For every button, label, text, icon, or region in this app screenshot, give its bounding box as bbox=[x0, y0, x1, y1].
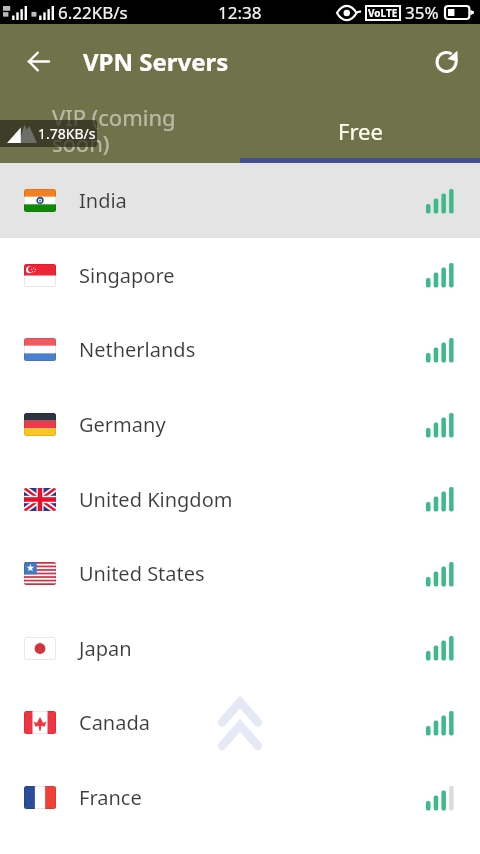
button[interactable]: Free bbox=[240, 98, 480, 163]
staticText: Netherlands bbox=[79, 336, 196, 363]
button[interactable]: VIP (coming soon) bbox=[0, 98, 240, 163]
staticText: Free bbox=[338, 116, 383, 146]
staticText: 35% bbox=[405, 1, 439, 24]
other: Scroll up bbox=[215, 694, 265, 758]
staticText: VoLTE bbox=[368, 6, 398, 20]
button[interactable]: United States bbox=[0, 536, 480, 611]
button[interactable]: France bbox=[0, 760, 480, 835]
staticText: Germany bbox=[79, 411, 166, 438]
staticText: 12:38 bbox=[218, 1, 262, 24]
staticText: France bbox=[79, 784, 142, 811]
button[interactable]: Refresh bbox=[425, 39, 469, 83]
staticText: United Kingdom bbox=[79, 486, 233, 513]
staticText: VIP (coming soon) bbox=[52, 102, 176, 159]
button[interactable]: Netherlands bbox=[0, 312, 480, 387]
staticText: Singapore bbox=[79, 262, 175, 289]
button[interactable]: India bbox=[0, 163, 480, 238]
staticText: United States bbox=[79, 560, 205, 587]
staticText: India bbox=[79, 187, 127, 214]
button[interactable]: Back bbox=[16, 39, 60, 83]
staticText: VPN Servers bbox=[83, 45, 229, 78]
staticText: 6.22KB/s bbox=[58, 1, 128, 24]
button[interactable]: Japan bbox=[0, 611, 480, 685]
button[interactable]: Singapore bbox=[0, 238, 480, 312]
button[interactable]: United Kingdom bbox=[0, 462, 480, 536]
staticText: 1.78KB/s bbox=[38, 124, 96, 143]
staticText: Japan bbox=[79, 635, 132, 662]
button[interactable]: Germany bbox=[0, 387, 480, 462]
staticText: Canada bbox=[79, 709, 150, 736]
button[interactable]: Canada bbox=[0, 685, 480, 760]
